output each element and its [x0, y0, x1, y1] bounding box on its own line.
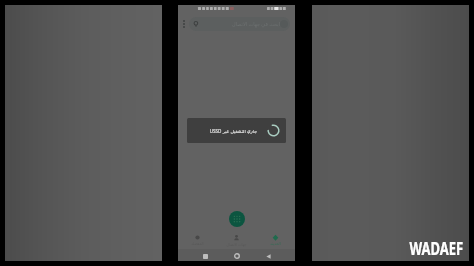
button[interactable]: الحديثة: [256, 231, 295, 249]
button[interactable]: More options: [178, 14, 189, 33]
button[interactable]: المفضلة: [178, 231, 217, 249]
button[interactable]: Home: [232, 251, 242, 261]
staticText: ابحث في جهات الاتصال: [232, 21, 281, 28]
button[interactable]: Search: [189, 17, 290, 31]
button[interactable]: جهات الاتصال: [217, 231, 256, 249]
staticText: جاري التشغيل عبر USSD: [209, 128, 257, 134]
button[interactable]: Recents: [200, 251, 210, 261]
button[interactable]: Back: [263, 251, 273, 261]
other: Search: [193, 21, 199, 27]
button[interactable]: Dial pad: [229, 211, 245, 227]
staticText: WADAEF: [409, 236, 464, 260]
staticText: الحديثة: [270, 242, 281, 246]
